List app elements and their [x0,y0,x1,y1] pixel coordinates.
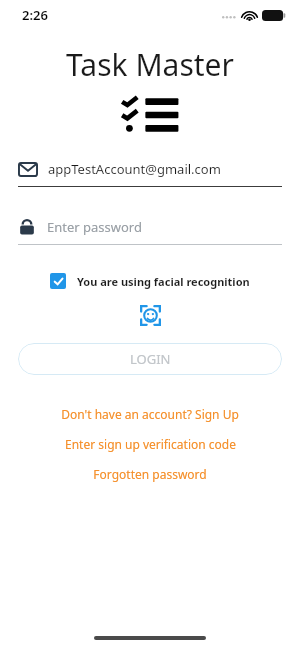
button[interactable]: appTestAccount@gmail.com [18,157,282,181]
staticText: appTestAccount@gmail.com [48,160,221,178]
staticText: 2:26 [22,6,48,24]
staticText: Don't have an account? Sign Up [61,406,239,422]
staticText: Enter sign up verification code [65,436,236,452]
button[interactable]: You are using facial recognition [50,273,250,289]
staticText: Enter password [47,218,142,236]
staticText: Forgotten password [93,466,207,482]
button[interactable]: Enter sign up verification code [0,433,300,455]
button[interactable]: LOGIN [18,343,282,375]
staticText: Task Master [0,44,300,85]
button[interactable]: Enter password [18,215,282,239]
staticText: LOGIN [130,350,171,368]
button[interactable]: Forgotten password [0,463,300,485]
button[interactable]: Don't have an account? Sign Up [0,403,300,425]
staticText: You are using facial recognition [77,274,250,289]
button[interactable]: Face recognition login [138,303,162,327]
